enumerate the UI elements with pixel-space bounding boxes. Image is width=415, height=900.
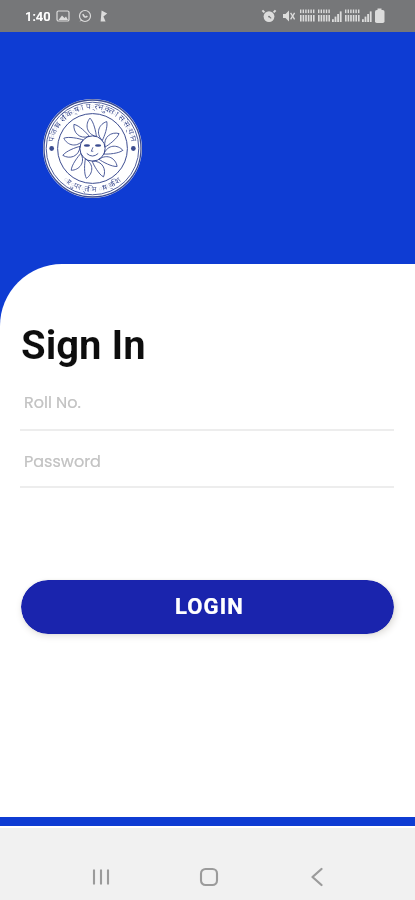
staticText: Password — [24, 450, 101, 472]
staticText: Roll No. — [24, 391, 81, 413]
staticText: Sign In — [21, 322, 146, 369]
button[interactable]: LOGIN — [21, 580, 394, 634]
button[interactable]: Recent apps — [70, 854, 132, 900]
button[interactable]: Home — [178, 854, 240, 900]
button[interactable]: Password — [20, 450, 394, 487]
button[interactable]: Roll No. — [20, 391, 394, 428]
staticText: 1:40 — [25, 9, 51, 24]
button[interactable]: Back — [286, 854, 348, 900]
staticText: LOGIN — [175, 594, 244, 620]
